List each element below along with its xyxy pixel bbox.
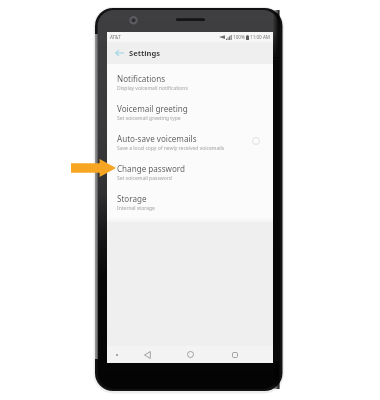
staticText: Internal storage xyxy=(117,205,155,212)
button[interactable]: Recents xyxy=(227,347,242,362)
staticText: Notifications xyxy=(117,73,166,84)
staticText: Change password xyxy=(117,163,185,174)
staticText: 100% xyxy=(233,34,245,40)
staticText: Save a local copy of newly received voic… xyxy=(117,145,225,152)
button[interactable]: Back xyxy=(140,347,155,362)
button[interactable]: Back xyxy=(112,46,126,60)
staticText: Display voicemail notifications xyxy=(117,85,188,92)
staticText: Settings xyxy=(129,48,161,58)
staticText: Set voicemail password xyxy=(117,175,172,182)
staticText: Voicemail greeting xyxy=(117,103,188,114)
button[interactable]: Home xyxy=(183,347,198,362)
button[interactable]: Storage xyxy=(107,187,273,217)
staticText: Set voicemail greeting type xyxy=(117,115,181,122)
button[interactable]: Voicemail greeting xyxy=(107,97,273,127)
button[interactable]: Notifications xyxy=(107,67,273,97)
staticText: AT&T xyxy=(110,34,121,40)
button[interactable]: Change password xyxy=(107,157,273,187)
staticText: Storage xyxy=(117,193,147,204)
staticText: 11:00 AM xyxy=(250,34,271,40)
staticText: Auto-save voicemails xyxy=(117,133,197,144)
button[interactable]: Auto-save voicemails xyxy=(107,127,273,157)
